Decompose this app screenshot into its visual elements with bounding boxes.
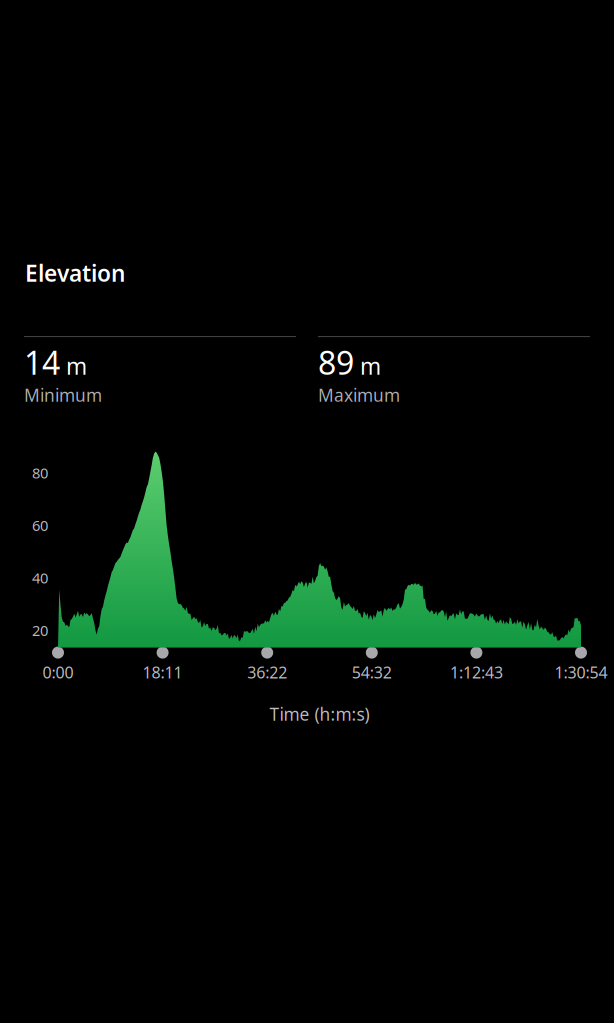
staticText: 1:12:43 [450, 662, 503, 683]
staticText: Time (h:m:s) [269, 703, 369, 726]
staticText: 36:22 [247, 662, 287, 683]
staticText: 1:30:54 [554, 662, 607, 683]
staticText: 40 [32, 568, 48, 588]
staticText: 89 [318, 341, 354, 384]
staticText: m [360, 351, 381, 381]
staticText: 80 [32, 463, 48, 483]
staticText: 54:32 [352, 662, 392, 683]
staticText: 18:11 [143, 662, 183, 683]
staticText: Maximum [318, 384, 400, 407]
staticText: 20 [32, 621, 48, 640]
staticText: Elevation [25, 258, 125, 288]
staticText: 14 [24, 341, 60, 384]
staticText: 60 [32, 516, 48, 535]
staticText: Minimum [24, 384, 102, 407]
staticText: m [66, 351, 87, 381]
staticText: 0:00 [42, 662, 73, 683]
